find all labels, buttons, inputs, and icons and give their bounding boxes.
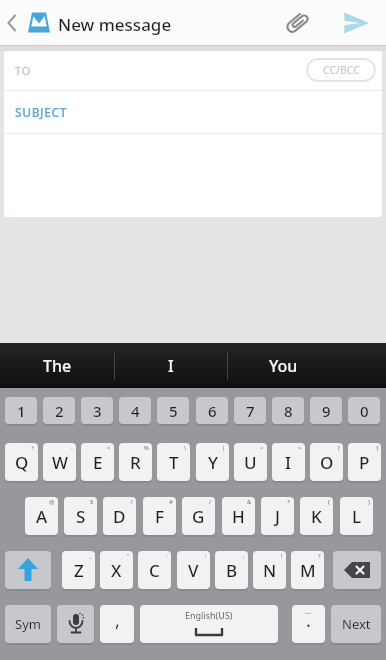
staticText: O xyxy=(320,451,334,474)
staticText: - xyxy=(71,444,73,452)
staticText: > xyxy=(298,444,302,452)
staticText: 1 xyxy=(17,401,26,421)
button[interactable] xyxy=(281,7,313,39)
button[interactable]: O xyxy=(310,443,343,481)
button[interactable]: B xyxy=(215,551,248,589)
button[interactable]: I xyxy=(114,343,227,388)
button[interactable]: V xyxy=(177,551,210,589)
staticText: T xyxy=(169,451,179,474)
button[interactable]: 9 xyxy=(310,397,342,424)
button[interactable]: Next xyxy=(331,605,381,643)
button[interactable]: W xyxy=(43,443,76,481)
staticText: D xyxy=(113,505,126,528)
staticText: ; xyxy=(205,552,207,560)
staticText: P xyxy=(359,451,370,474)
button[interactable]: X xyxy=(100,551,133,589)
button[interactable]: 6 xyxy=(196,397,228,424)
staticText: 9 xyxy=(322,401,331,421)
staticText: @ xyxy=(49,498,55,506)
button[interactable]: I xyxy=(272,443,305,481)
staticText: $ xyxy=(90,498,94,506)
button[interactable]: 8 xyxy=(272,397,304,424)
staticText: Next xyxy=(342,615,371,633)
button[interactable]: 1 xyxy=(5,397,37,424)
staticText: 7 xyxy=(246,401,255,421)
staticText: CC/BCC xyxy=(323,63,360,77)
button[interactable]: U xyxy=(234,443,267,481)
staticText: A xyxy=(36,505,48,528)
button[interactable] xyxy=(4,91,382,133)
staticText: SUBJECT xyxy=(15,104,68,120)
button[interactable]: The xyxy=(0,343,114,388)
button[interactable]: Y xyxy=(196,443,229,481)
button[interactable] xyxy=(333,551,381,589)
button[interactable]: S xyxy=(64,497,97,535)
button[interactable]: 7 xyxy=(234,397,266,424)
staticText: | xyxy=(222,444,226,452)
button[interactable] xyxy=(57,605,94,643)
staticText: ! xyxy=(131,498,133,506)
staticText: C xyxy=(149,559,160,582)
button[interactable]: 0 xyxy=(348,397,380,424)
button[interactable]: , xyxy=(100,605,134,643)
staticText: New message xyxy=(58,13,172,36)
staticText: ... xyxy=(305,605,312,616)
button[interactable]: F xyxy=(143,497,176,535)
staticText: R xyxy=(130,451,141,474)
button[interactable]: D xyxy=(103,497,136,535)
staticText: Y xyxy=(208,451,218,474)
staticText: Q xyxy=(15,451,29,474)
button[interactable] xyxy=(6,14,18,32)
button[interactable]: C xyxy=(138,551,171,589)
button[interactable]: G xyxy=(182,497,215,535)
button[interactable]: E xyxy=(81,443,114,481)
staticText: 2 xyxy=(55,401,64,421)
staticText: * xyxy=(287,498,291,506)
staticText: X xyxy=(111,559,122,582)
staticText: You xyxy=(269,355,298,377)
button[interactable]: 4 xyxy=(119,397,151,424)
button[interactable] xyxy=(342,11,370,35)
staticText: K xyxy=(311,505,322,528)
staticText: F xyxy=(155,505,164,528)
staticText: W xyxy=(52,451,68,474)
button[interactable]: J xyxy=(261,497,294,535)
staticText: " xyxy=(127,552,130,560)
staticText: Z xyxy=(74,559,84,582)
staticText: : xyxy=(166,552,168,560)
button[interactable]: R xyxy=(119,443,152,481)
button[interactable]: H xyxy=(222,497,255,535)
staticText: I xyxy=(285,451,292,474)
staticText: [ xyxy=(338,444,340,452)
staticText: E xyxy=(93,451,103,474)
staticText: I xyxy=(168,355,174,377)
button[interactable]: T xyxy=(157,443,190,481)
staticText: # xyxy=(169,498,173,506)
staticText: H xyxy=(232,505,245,528)
button[interactable] xyxy=(5,551,51,589)
staticText: ( xyxy=(328,498,330,506)
staticText: U xyxy=(244,451,257,474)
button[interactable]: A xyxy=(25,497,58,535)
staticText: . xyxy=(306,608,311,633)
button[interactable]: 3 xyxy=(81,397,113,424)
staticText: ) xyxy=(368,498,370,506)
staticText: 3 xyxy=(93,401,102,421)
button[interactable]: N xyxy=(253,551,286,589)
button[interactable]: Z xyxy=(62,551,95,589)
button[interactable]: You xyxy=(227,343,340,388)
button[interactable]: L xyxy=(340,497,373,535)
button[interactable]: Q xyxy=(5,443,38,481)
button[interactable]: CC/BCC xyxy=(306,58,376,82)
button[interactable]: English(US) xyxy=(140,605,278,643)
button[interactable]: K xyxy=(300,497,333,535)
button[interactable]: Sym xyxy=(5,605,51,643)
button[interactable]: 2 xyxy=(43,397,75,424)
button[interactable]: P xyxy=(348,443,381,481)
button[interactable] xyxy=(4,51,382,90)
button[interactable]: M xyxy=(291,551,324,589)
button[interactable]: . xyxy=(292,605,325,643)
button[interactable]: 5 xyxy=(157,397,189,424)
staticText: _ xyxy=(89,552,92,560)
